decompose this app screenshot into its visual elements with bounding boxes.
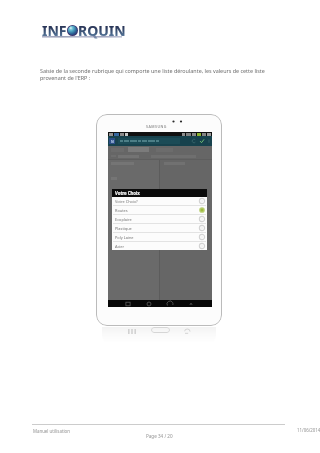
staticText: INF [42, 21, 67, 40]
staticText: RQUIN [78, 21, 126, 40]
button[interactable]: Validate [199, 138, 205, 144]
staticText: 11/06/2014 [297, 427, 320, 433]
staticText: Poly Laine [115, 235, 134, 240]
button[interactable]: More options [207, 139, 211, 143]
button[interactable]: Acier [112, 242, 207, 250]
button[interactable]: Recent apps [125, 301, 131, 307]
button[interactable]: Plastique [112, 224, 207, 232]
staticText: Saisie de la seconde rubrique qui compor… [40, 67, 265, 74]
staticText: Ecoplaire [115, 217, 132, 222]
staticText: Votre Choix? [115, 199, 138, 204]
button[interactable]: Refresh [191, 138, 197, 144]
button[interactable]: Routes [112, 206, 207, 214]
button[interactable]: Votre Choix? [112, 197, 207, 205]
staticText: provenant de l'ERP : [40, 74, 91, 81]
staticText: Acier [115, 244, 125, 249]
staticText: Plastique [115, 226, 132, 231]
button[interactable]: Home [146, 301, 152, 307]
staticText: SAMSUNG [146, 124, 167, 129]
button[interactable]: Poly Laine [112, 233, 207, 241]
button[interactable]: Ecoplaire [112, 215, 207, 223]
staticText: Votre Choix [115, 190, 140, 196]
staticText: Page 34 / 20 [146, 433, 173, 439]
staticText: N [111, 139, 114, 144]
staticText: Routes [115, 208, 128, 213]
button[interactable]: Menu [188, 301, 194, 307]
staticText: Manuel utilisation [33, 428, 70, 434]
button[interactable]: Back [167, 301, 173, 307]
